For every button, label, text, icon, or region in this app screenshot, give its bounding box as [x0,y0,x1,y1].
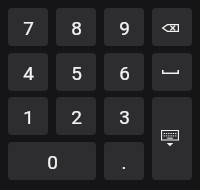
button[interactable]: 7 [8,8,48,46]
staticText: 3 [119,106,130,128]
button[interactable]: 4 [8,53,48,91]
staticText: 4 [23,62,34,84]
button[interactable]: Hide keyboard [152,97,192,180]
staticText: . [121,151,127,173]
button[interactable]: 0 [8,142,96,180]
button[interactable]: 5 [56,53,96,91]
button[interactable]: 3 [104,97,144,135]
button[interactable]: . [104,142,144,180]
staticText: 8 [71,17,82,39]
button[interactable]: 1 [8,97,48,135]
staticText: 0 [47,151,58,173]
staticText: 7 [23,17,34,39]
button[interactable]: Space [152,53,192,91]
button[interactable]: 8 [56,8,96,46]
button[interactable]: 9 [104,8,144,46]
staticText: 2 [71,106,82,128]
staticText: 9 [119,17,130,39]
staticText: 5 [71,62,82,84]
button[interactable]: 6 [104,53,144,91]
staticText: 6 [119,62,130,84]
button[interactable]: 2 [56,97,96,135]
button[interactable]: Backspace [152,8,192,46]
staticText: 1 [23,106,34,128]
